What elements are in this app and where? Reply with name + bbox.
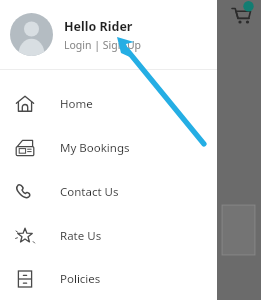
staticText: Hello Rider xyxy=(64,18,133,35)
button[interactable]: Cart xyxy=(229,2,255,28)
staticText: My Bookings xyxy=(60,140,130,156)
staticText: Home xyxy=(60,96,93,112)
button[interactable]: Home xyxy=(0,82,217,126)
button[interactable]: My Bookings xyxy=(0,126,217,170)
button[interactable]: Contact Us xyxy=(0,170,217,214)
button[interactable]: Hello Rider xyxy=(0,0,217,69)
button[interactable]: Policies xyxy=(0,258,217,300)
staticText: Login | Sign Up xyxy=(64,38,142,52)
staticText: Contact Us xyxy=(60,184,119,200)
staticText: Policies xyxy=(60,271,101,287)
button[interactable]: Rate Us xyxy=(0,214,217,258)
staticText: Rate Us xyxy=(60,228,102,244)
